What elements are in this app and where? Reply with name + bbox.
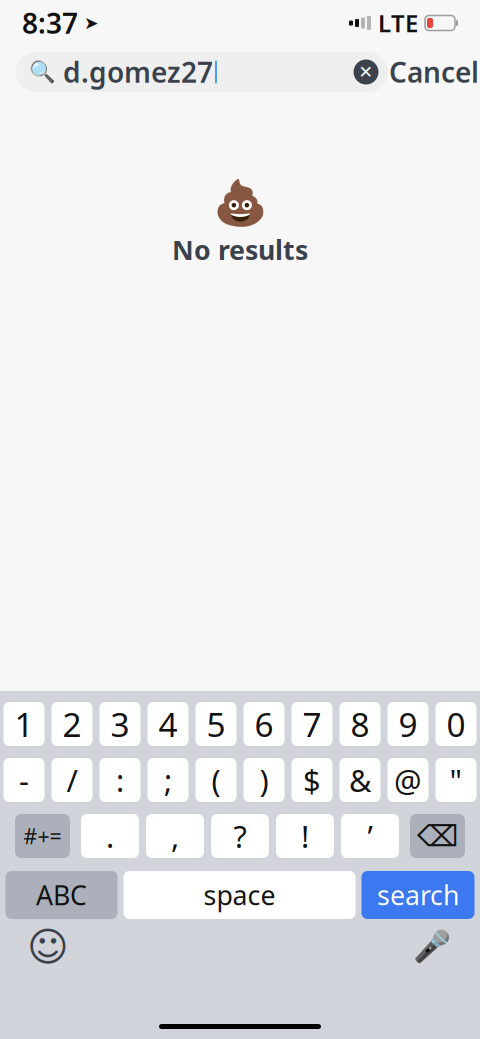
staticText: @ bbox=[394, 760, 422, 800]
staticText: ! bbox=[301, 816, 309, 856]
staticText: & bbox=[349, 760, 371, 800]
button[interactable]: ; bbox=[147, 758, 188, 802]
staticText: 8:37 bbox=[22, 4, 78, 42]
staticText: / bbox=[66, 760, 77, 800]
button[interactable]: " bbox=[435, 758, 476, 802]
button[interactable]: 6 bbox=[243, 702, 284, 746]
button[interactable]: - bbox=[3, 758, 44, 802]
button[interactable]: ABC bbox=[5, 871, 117, 919]
button[interactable]: 8 bbox=[339, 702, 380, 746]
button[interactable]: : bbox=[99, 758, 140, 802]
staticText: ✕ bbox=[358, 62, 373, 82]
button[interactable]: 9 bbox=[387, 702, 428, 746]
staticText: 6 bbox=[254, 702, 273, 746]
staticText: 🎤 bbox=[413, 929, 451, 964]
button[interactable]: 5 bbox=[195, 702, 236, 746]
staticText: - bbox=[19, 760, 29, 800]
staticText: 1 bbox=[14, 702, 33, 746]
staticText: $ bbox=[303, 760, 321, 800]
staticText: 8 bbox=[350, 702, 369, 746]
button[interactable]: ) bbox=[243, 758, 284, 802]
staticText: 5 bbox=[206, 702, 225, 746]
button[interactable]: 1 bbox=[3, 702, 44, 746]
staticText: 3 bbox=[110, 702, 129, 746]
staticText: ? bbox=[233, 816, 246, 856]
button[interactable]: . bbox=[81, 814, 139, 858]
button[interactable]: @ bbox=[387, 758, 428, 802]
button[interactable]: $ bbox=[291, 758, 332, 802]
staticText: Cancel bbox=[389, 53, 479, 91]
staticText: 2 bbox=[62, 702, 81, 746]
button[interactable]: 3 bbox=[99, 702, 140, 746]
staticText: search bbox=[377, 877, 459, 913]
button[interactable]: ’ bbox=[341, 814, 399, 858]
staticText: 7 bbox=[302, 702, 321, 746]
button[interactable]: Emoji keyboard bbox=[24, 925, 72, 969]
button[interactable]: 4 bbox=[147, 702, 188, 746]
button[interactable]: 0 bbox=[435, 702, 476, 746]
staticText: " bbox=[449, 760, 462, 800]
staticText: LTE bbox=[378, 7, 418, 39]
staticText: ☺ bbox=[27, 924, 69, 970]
staticText: : bbox=[116, 760, 124, 800]
button[interactable]: Clear text bbox=[344, 52, 388, 92]
staticText: ⌫ bbox=[417, 819, 458, 853]
button[interactable]: ! bbox=[276, 814, 334, 858]
staticText: , bbox=[171, 816, 179, 856]
button[interactable]: Delete bbox=[410, 814, 465, 858]
button[interactable]: 7 bbox=[291, 702, 332, 746]
staticText: No results bbox=[172, 232, 308, 267]
button[interactable]: & bbox=[339, 758, 380, 802]
staticText: ’ bbox=[367, 816, 372, 856]
staticText: ) bbox=[259, 760, 268, 800]
staticText: ; bbox=[164, 760, 172, 800]
button[interactable]: Cancel bbox=[388, 50, 480, 94]
button[interactable]: ( bbox=[195, 758, 236, 802]
button[interactable]: ? bbox=[211, 814, 269, 858]
button[interactable]: / bbox=[51, 758, 92, 802]
staticText: 4 bbox=[158, 702, 177, 746]
button[interactable]: Symbols bbox=[15, 814, 70, 858]
button[interactable]: Dictation bbox=[408, 925, 456, 969]
staticText: space bbox=[203, 877, 275, 913]
staticText: . bbox=[106, 816, 114, 856]
staticText: ABC bbox=[36, 877, 87, 913]
button[interactable]: 2 bbox=[51, 702, 92, 746]
button[interactable]: search bbox=[361, 871, 474, 919]
staticText: #+= bbox=[23, 822, 61, 850]
staticText: ( bbox=[211, 760, 220, 800]
staticText: 9 bbox=[398, 702, 417, 746]
staticText: 0 bbox=[446, 702, 465, 746]
staticText: 🔍 bbox=[29, 60, 56, 84]
staticText: 💩 bbox=[212, 178, 267, 228]
staticText: d.gomez27 bbox=[63, 53, 213, 91]
staticText: ➤ bbox=[78, 13, 99, 33]
button[interactable]: , bbox=[146, 814, 204, 858]
button[interactable]: space bbox=[123, 871, 355, 919]
